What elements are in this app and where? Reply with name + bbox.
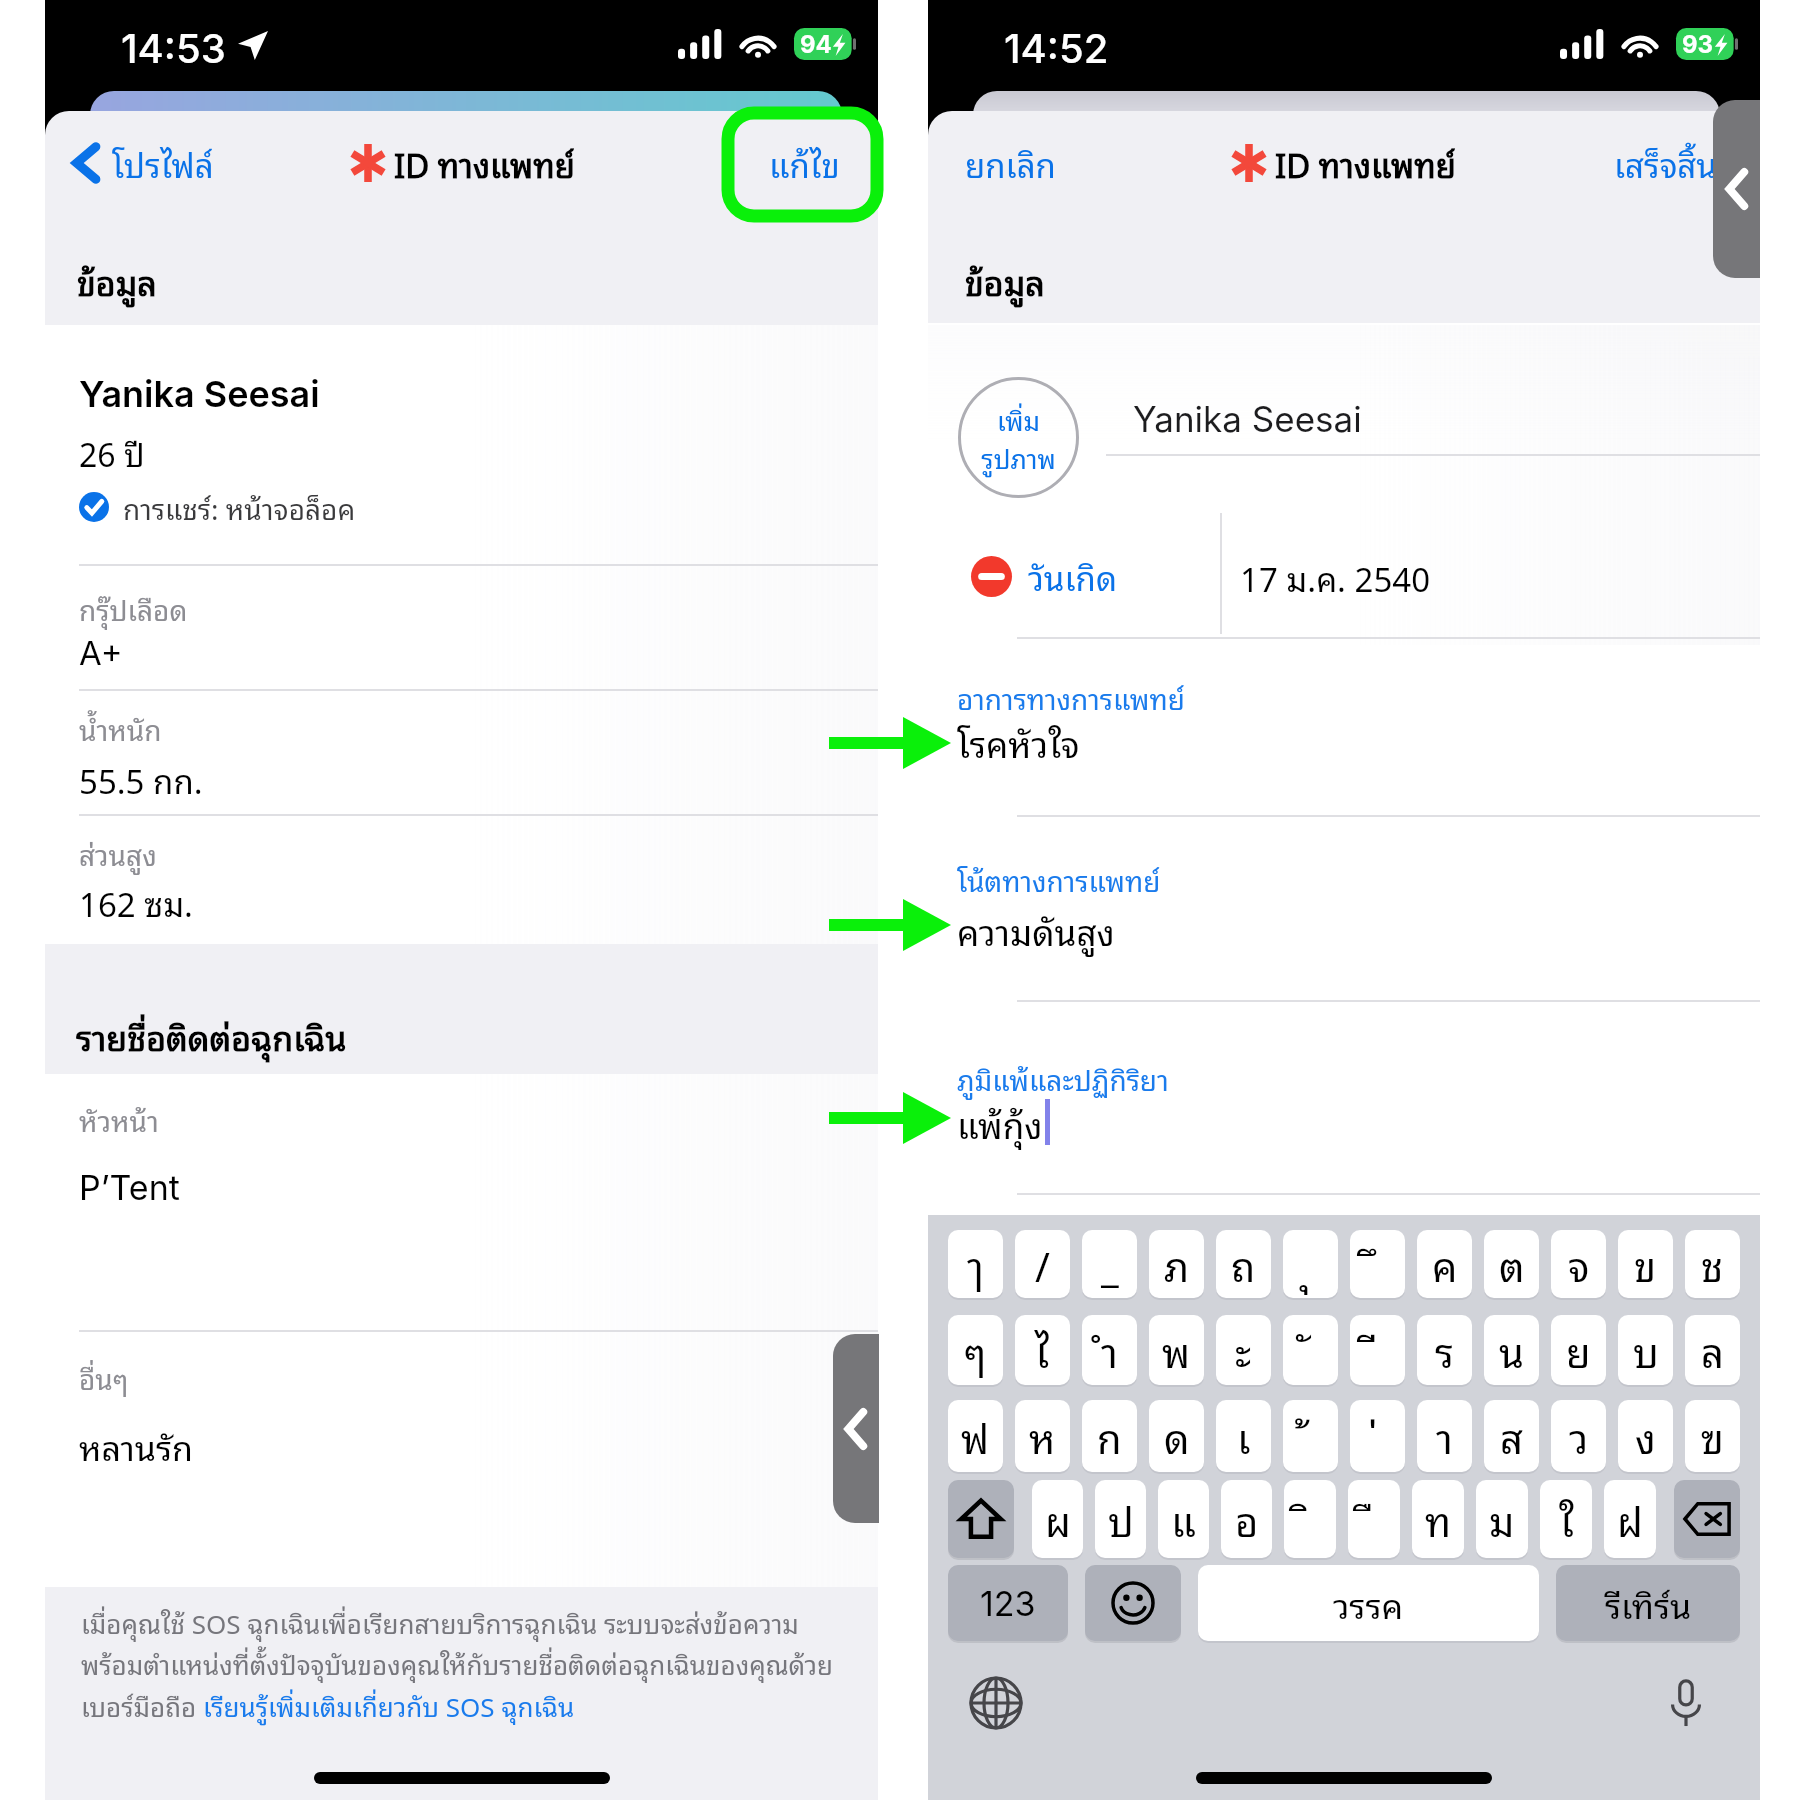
staticText: โน้ตทางการแพทย์ xyxy=(957,857,1161,902)
staticText: ใ xyxy=(1559,1487,1574,1551)
button[interactable]: แก้ไข xyxy=(759,123,850,203)
button[interactable]: โปรไฟล์ xyxy=(63,123,224,203)
button[interactable]: ึ xyxy=(1350,1230,1405,1298)
button[interactable]: ห xyxy=(1015,1400,1070,1472)
button[interactable]: Back xyxy=(1713,100,1760,278)
button[interactable]: ภ xyxy=(1149,1230,1204,1298)
staticText: ID ทางแพทย์ xyxy=(394,137,576,190)
button[interactable]: ป xyxy=(1095,1480,1146,1558)
button[interactable]: ร xyxy=(1417,1315,1472,1385)
button[interactable] xyxy=(1085,1565,1181,1641)
button[interactable]: ม xyxy=(1476,1480,1528,1558)
staticText: ว xyxy=(1569,1404,1589,1468)
button[interactable]: ้ xyxy=(1283,1400,1338,1472)
staticText: อื่นๆ xyxy=(79,1355,129,1400)
button[interactable]: ค xyxy=(1417,1230,1472,1298)
staticText: หลานรัก xyxy=(79,1418,194,1472)
button[interactable]: ท xyxy=(1412,1480,1464,1558)
staticText: แ xyxy=(1171,1487,1196,1551)
button[interactable]: ี xyxy=(1350,1315,1405,1385)
staticText: วรรค xyxy=(1333,1576,1404,1630)
button[interactable]: า xyxy=(1417,1400,1472,1472)
button[interactable] xyxy=(948,1480,1014,1558)
staticText: ท xyxy=(1425,1487,1452,1551)
button[interactable]: ใ xyxy=(1540,1480,1592,1558)
staticText: พ xyxy=(1162,1318,1191,1382)
button[interactable]: ำ xyxy=(1082,1315,1137,1385)
button[interactable]: ด xyxy=(1149,1400,1204,1472)
staticText: ข xyxy=(1634,1232,1657,1296)
staticText: หัวหน้า xyxy=(79,1097,159,1142)
button[interactable]: บ xyxy=(1618,1315,1673,1385)
staticText: ป xyxy=(1108,1487,1134,1551)
staticText: ห xyxy=(1029,1404,1056,1468)
other: Remove date of birth xyxy=(971,556,1012,597)
button[interactable]: แ xyxy=(1158,1480,1209,1558)
staticText: ข้อมูล xyxy=(77,253,157,307)
staticText: น้ำหนัก xyxy=(79,706,162,751)
button[interactable]: ช xyxy=(1685,1230,1740,1298)
staticText: ง xyxy=(1635,1404,1656,1468)
staticText: 123 xyxy=(980,1583,1036,1624)
button[interactable]: น xyxy=(1484,1315,1539,1385)
staticText: อาการทางการแพทย์ xyxy=(957,675,1185,720)
button[interactable]: Remove date of birth xyxy=(971,541,1117,611)
button[interactable]: ว xyxy=(1551,1400,1606,1472)
staticText: 26 ปี xyxy=(79,427,145,478)
staticText: เมื่อคุณใช้ SOS ฉุกเฉินเพื่อเรียกสายบริก… xyxy=(81,1601,799,1643)
staticText: ส่วนสูง xyxy=(79,831,157,876)
staticText: 14:53 xyxy=(121,24,226,72)
button[interactable]: Add photo xyxy=(958,377,1079,498)
button[interactable]: จ xyxy=(1551,1230,1606,1298)
button[interactable]: ฝ xyxy=(1604,1480,1656,1558)
button[interactable]: ั xyxy=(1283,1315,1338,1385)
button[interactable]: ื xyxy=(1348,1480,1400,1558)
button[interactable]: ฟ xyxy=(948,1400,1003,1472)
staticText: ยกเลิก xyxy=(965,137,1056,190)
staticText: 162 ซม. xyxy=(79,876,193,929)
staticText: เพิ่ม รูปภาพ xyxy=(981,398,1056,478)
button[interactable]: Back xyxy=(833,1334,879,1523)
staticText: กรุ๊ปเลือด xyxy=(79,586,188,631)
staticText: โรคหัวใจ xyxy=(957,714,1080,770)
button[interactable]: ง xyxy=(1618,1400,1673,1472)
button[interactable]: / xyxy=(1015,1230,1070,1298)
button[interactable]: อ xyxy=(1221,1480,1272,1558)
staticText: ความดันสูง xyxy=(957,902,1115,958)
button[interactable]: เสร็จสิ้น xyxy=(1604,123,1727,203)
button[interactable]: พ xyxy=(1149,1315,1204,1385)
staticText: P’Tent xyxy=(79,1167,180,1208)
button[interactable]: ุ xyxy=(1283,1230,1338,1298)
button[interactable]: ข xyxy=(1618,1230,1673,1298)
button[interactable]: ย xyxy=(1551,1315,1606,1385)
button[interactable]: ่ xyxy=(1350,1400,1405,1472)
button[interactable]: ๆ xyxy=(948,1315,1003,1385)
staticText: ำ xyxy=(1101,1318,1118,1382)
button[interactable]: ฃ xyxy=(1685,1400,1740,1472)
button[interactable]: ก xyxy=(1082,1400,1137,1472)
button[interactable]: 123 xyxy=(948,1565,1068,1641)
button[interactable]: เรียนรู้เพิ่มเติมเกี่ยวกับ SOS ฉุกเฉิน xyxy=(203,1684,575,1726)
button[interactable]: Dictation xyxy=(1650,1667,1722,1739)
staticText: วันเกิด xyxy=(1028,550,1117,603)
button[interactable]: ผ xyxy=(1032,1480,1083,1558)
button[interactable]: วรรค xyxy=(1198,1565,1539,1641)
button[interactable]: ะ xyxy=(1216,1315,1271,1385)
staticText: 93 xyxy=(1682,30,1714,59)
other: Delete xyxy=(1674,1480,1740,1558)
button[interactable]: ๅ xyxy=(948,1230,1003,1298)
button[interactable]: Switch keyboard language xyxy=(960,1667,1032,1739)
button[interactable]: ยกเลิก xyxy=(955,123,1066,203)
button[interactable]: ต xyxy=(1484,1230,1539,1298)
staticText: ก xyxy=(1097,1404,1122,1468)
staticText: จ xyxy=(1568,1232,1590,1296)
button[interactable]: ล xyxy=(1685,1315,1740,1385)
button[interactable]: ส xyxy=(1484,1400,1539,1472)
button[interactable]: รีเทิร์น xyxy=(1556,1565,1740,1641)
button[interactable]: ถ xyxy=(1216,1230,1271,1298)
button[interactable] xyxy=(1674,1480,1740,1558)
button[interactable]: ไ xyxy=(1015,1315,1070,1385)
button[interactable]: เ xyxy=(1216,1400,1271,1472)
button[interactable]: ิ xyxy=(1284,1480,1336,1558)
button[interactable]: _ xyxy=(1082,1230,1137,1298)
